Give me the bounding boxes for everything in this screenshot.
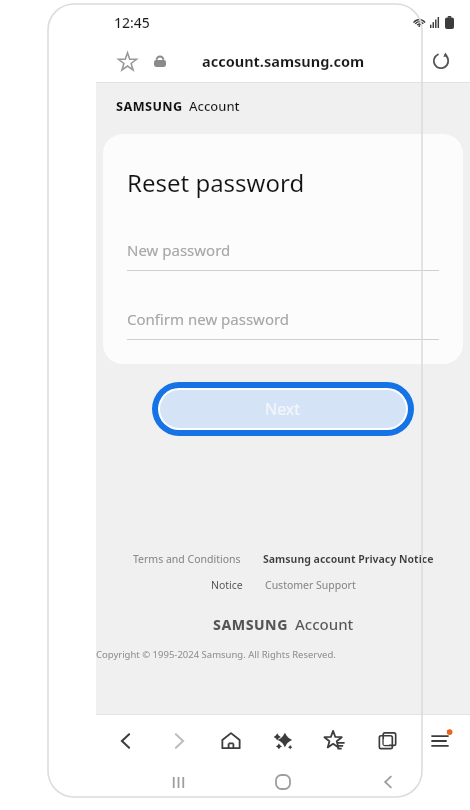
button[interactable]: Menu bbox=[418, 719, 462, 763]
button[interactable]: Tabs bbox=[366, 719, 410, 763]
button[interactable]: Reload bbox=[424, 44, 458, 78]
staticText: SAMSUNG bbox=[213, 615, 288, 634]
button[interactable]: Site security bbox=[146, 47, 174, 75]
staticText: 12:45 bbox=[114, 13, 150, 32]
button[interactable]: Back bbox=[365, 767, 411, 797]
button[interactable]: account.samsung.com bbox=[202, 51, 365, 71]
button[interactable]: Next bbox=[152, 382, 414, 436]
button[interactable]: Bookmarks bbox=[110, 44, 144, 78]
button[interactable]: Terms and Conditions bbox=[129, 550, 245, 568]
button[interactable]: Back bbox=[104, 719, 148, 763]
staticText: Account bbox=[295, 614, 354, 634]
button[interactable]: Forward bbox=[157, 719, 201, 763]
button[interactable]: Confirm new password bbox=[127, 309, 439, 340]
staticText: Confirm new password bbox=[127, 309, 290, 329]
staticText: SAMSUNG bbox=[116, 98, 183, 115]
staticText: Copyright © 1995-2024 Samsung. All Right… bbox=[96, 648, 470, 661]
staticText: New password bbox=[127, 240, 231, 260]
staticText: Account bbox=[189, 97, 240, 115]
button[interactable]: Recents bbox=[155, 767, 201, 797]
staticText: account.samsung.com bbox=[202, 51, 365, 71]
button[interactable]: Samsung account Privacy Notice bbox=[259, 550, 438, 568]
staticText: Reset password bbox=[127, 166, 305, 199]
button[interactable]: Home bbox=[209, 719, 253, 763]
button[interactable]: Home bbox=[260, 767, 306, 797]
button[interactable]: Bookmarks bbox=[313, 719, 357, 763]
staticText: Next bbox=[265, 398, 301, 420]
button[interactable]: Notice bbox=[207, 576, 247, 594]
button[interactable]: New password bbox=[127, 240, 439, 271]
button[interactable]: Customer Support bbox=[261, 576, 360, 594]
button[interactable]: AI assist bbox=[261, 719, 305, 763]
